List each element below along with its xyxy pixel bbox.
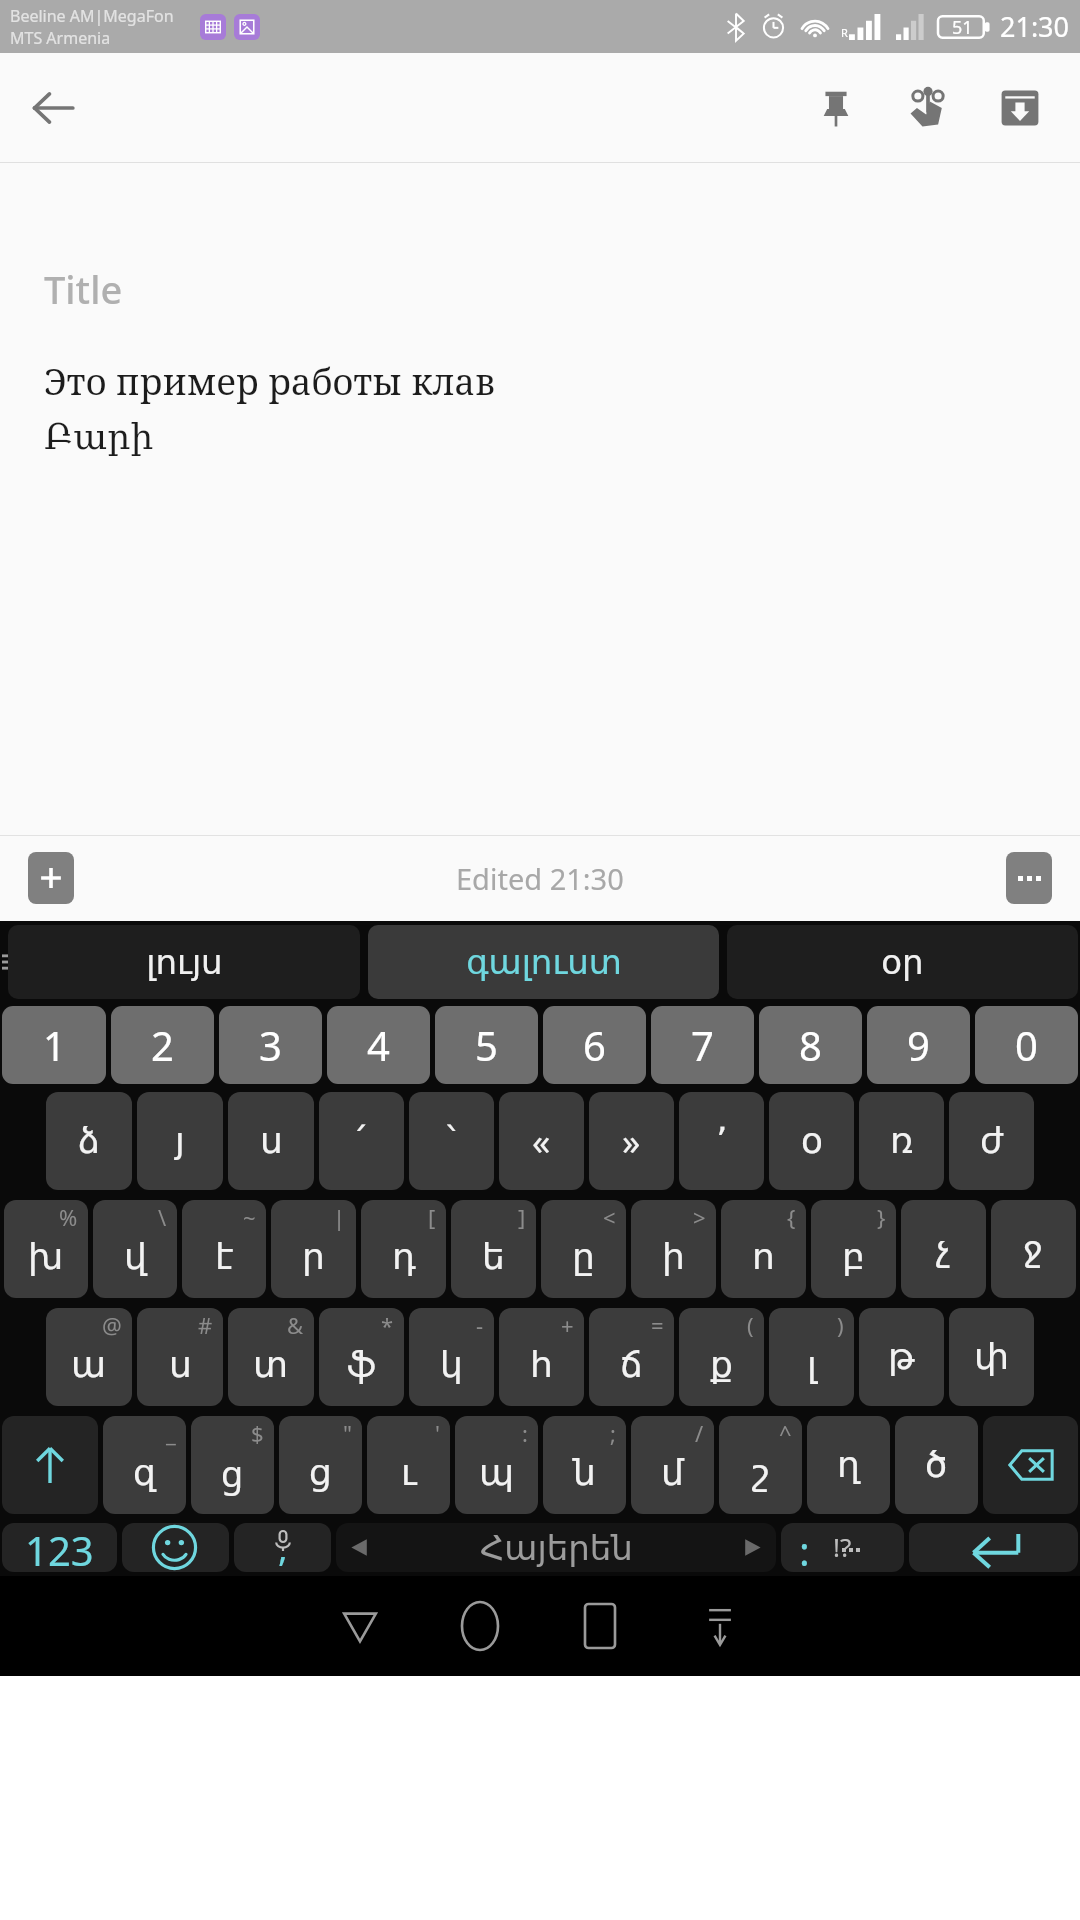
staticText: մ [661,1452,684,1494]
button[interactable]: \ [93,1200,177,1298]
staticText: 0 [1015,1018,1038,1072]
button[interactable]: 7 [651,1006,754,1084]
staticText: լ [807,1344,817,1386]
button[interactable]: $ [191,1416,274,1514]
button[interactable]: 2 [111,1006,214,1084]
button[interactable]: & [228,1308,314,1406]
staticText: ք [710,1344,733,1386]
staticText: < [603,1202,616,1232]
button[interactable]: ~ [182,1200,266,1298]
button[interactable]: [ [361,1200,446,1298]
button[interactable]: օր [727,925,1078,999]
button[interactable]: փ [949,1308,1034,1406]
staticText: ա [71,1344,107,1386]
button[interactable]: յ [137,1092,223,1190]
button[interactable]: ՝ [409,1092,494,1190]
button[interactable]: - [409,1308,494,1406]
button[interactable]: 5 [435,1006,538,1084]
button[interactable]: 8 [759,1006,862,1084]
button[interactable]: ՛ [319,1092,404,1190]
button[interactable]: 9 [867,1006,970,1084]
button[interactable]: * [319,1308,404,1406]
button[interactable]: ռ [859,1092,944,1190]
staticText: ռ [890,1120,914,1162]
button[interactable]: Add [28,852,74,904]
button[interactable]: ջ [991,1200,1076,1298]
button[interactable]: !? [781,1523,904,1572]
button[interactable]: ( [679,1308,764,1406]
button[interactable]: ՚ [679,1092,764,1190]
button[interactable]: + [499,1308,584,1406]
button[interactable]: | [271,1200,356,1298]
button[interactable]: Enter [909,1523,1078,1572]
staticText: տ [253,1344,289,1386]
button[interactable]: լույս [8,925,360,999]
button[interactable]: Emoji [122,1523,229,1572]
staticText: : [522,1418,528,1448]
staticText: Это пример работы клав Բարի [44,357,495,458]
staticText: _ [166,1418,176,1448]
button[interactable]: ժ [949,1092,1034,1190]
staticText: ս [169,1344,192,1386]
staticText: ձ [78,1120,100,1162]
button[interactable]: Archive [974,62,1066,154]
button[interactable]: ս [228,1092,314,1190]
button[interactable]: թ [859,1308,944,1406]
staticText: } [877,1202,886,1232]
button[interactable]: } [811,1200,896,1298]
staticText: # [198,1310,213,1340]
button[interactable]: , [234,1523,331,1572]
button[interactable]: Hide keyboard [660,1576,780,1676]
staticText: % [59,1202,78,1232]
button[interactable]: ' [367,1416,450,1514]
button[interactable]: 1 [2,1006,106,1084]
button[interactable]: 0 [975,1006,1078,1084]
button[interactable]: / [631,1416,714,1514]
button[interactable]: < [541,1200,626,1298]
button[interactable]: Backspace [983,1416,1078,1514]
staticText: MTS Armenia [10,27,111,49]
button[interactable]: % [4,1200,88,1298]
button[interactable]: { [721,1200,806,1298]
staticText: $ [251,1418,264,1448]
button[interactable]: գալուստ [368,925,719,999]
button[interactable]: ) [769,1308,854,1406]
button[interactable]: 6 [543,1006,646,1084]
button[interactable]: > [631,1200,716,1298]
button[interactable]: Back [14,69,92,147]
button[interactable]: # [137,1308,223,1406]
button[interactable]: Shift [2,1416,98,1514]
button[interactable]: Back [300,1576,420,1676]
button[interactable]: ] [451,1200,536,1298]
button[interactable]: ղ [807,1416,890,1514]
staticText: ՝ [447,1120,456,1162]
button[interactable]: ^ [719,1416,802,1514]
staticText: ց [309,1452,332,1494]
staticText: g [221,1449,244,1498]
button[interactable]: օ [769,1092,854,1190]
button[interactable]: Recents [540,1576,660,1676]
button[interactable]: 4 [327,1006,430,1084]
button[interactable]: Pin [790,62,882,154]
button[interactable]: չ [901,1200,986,1298]
button[interactable]: ծ [895,1416,978,1514]
button[interactable]: ձ [46,1092,132,1190]
button[interactable]: " [279,1416,362,1514]
button[interactable]: Tap action [882,62,974,154]
button[interactable]: : [455,1416,538,1514]
staticText: ) [837,1310,844,1340]
button[interactable]: Հայերեն [336,1523,776,1572]
button[interactable]: _ [103,1416,186,1514]
button[interactable]: 3 [219,1006,322,1084]
staticText: & [287,1310,304,1340]
button[interactable]: Menu [0,921,26,1003]
button[interactable]: ; [543,1416,626,1514]
button[interactable]: Home [420,1576,540,1676]
button[interactable]: = [589,1308,674,1406]
button[interactable]: » [589,1092,674,1190]
button[interactable]: More options [1006,852,1052,904]
staticText: ջ [1023,1228,1044,1270]
button[interactable]: @ [46,1308,132,1406]
button[interactable]: 123 [2,1523,117,1572]
button[interactable]: « [499,1092,584,1190]
